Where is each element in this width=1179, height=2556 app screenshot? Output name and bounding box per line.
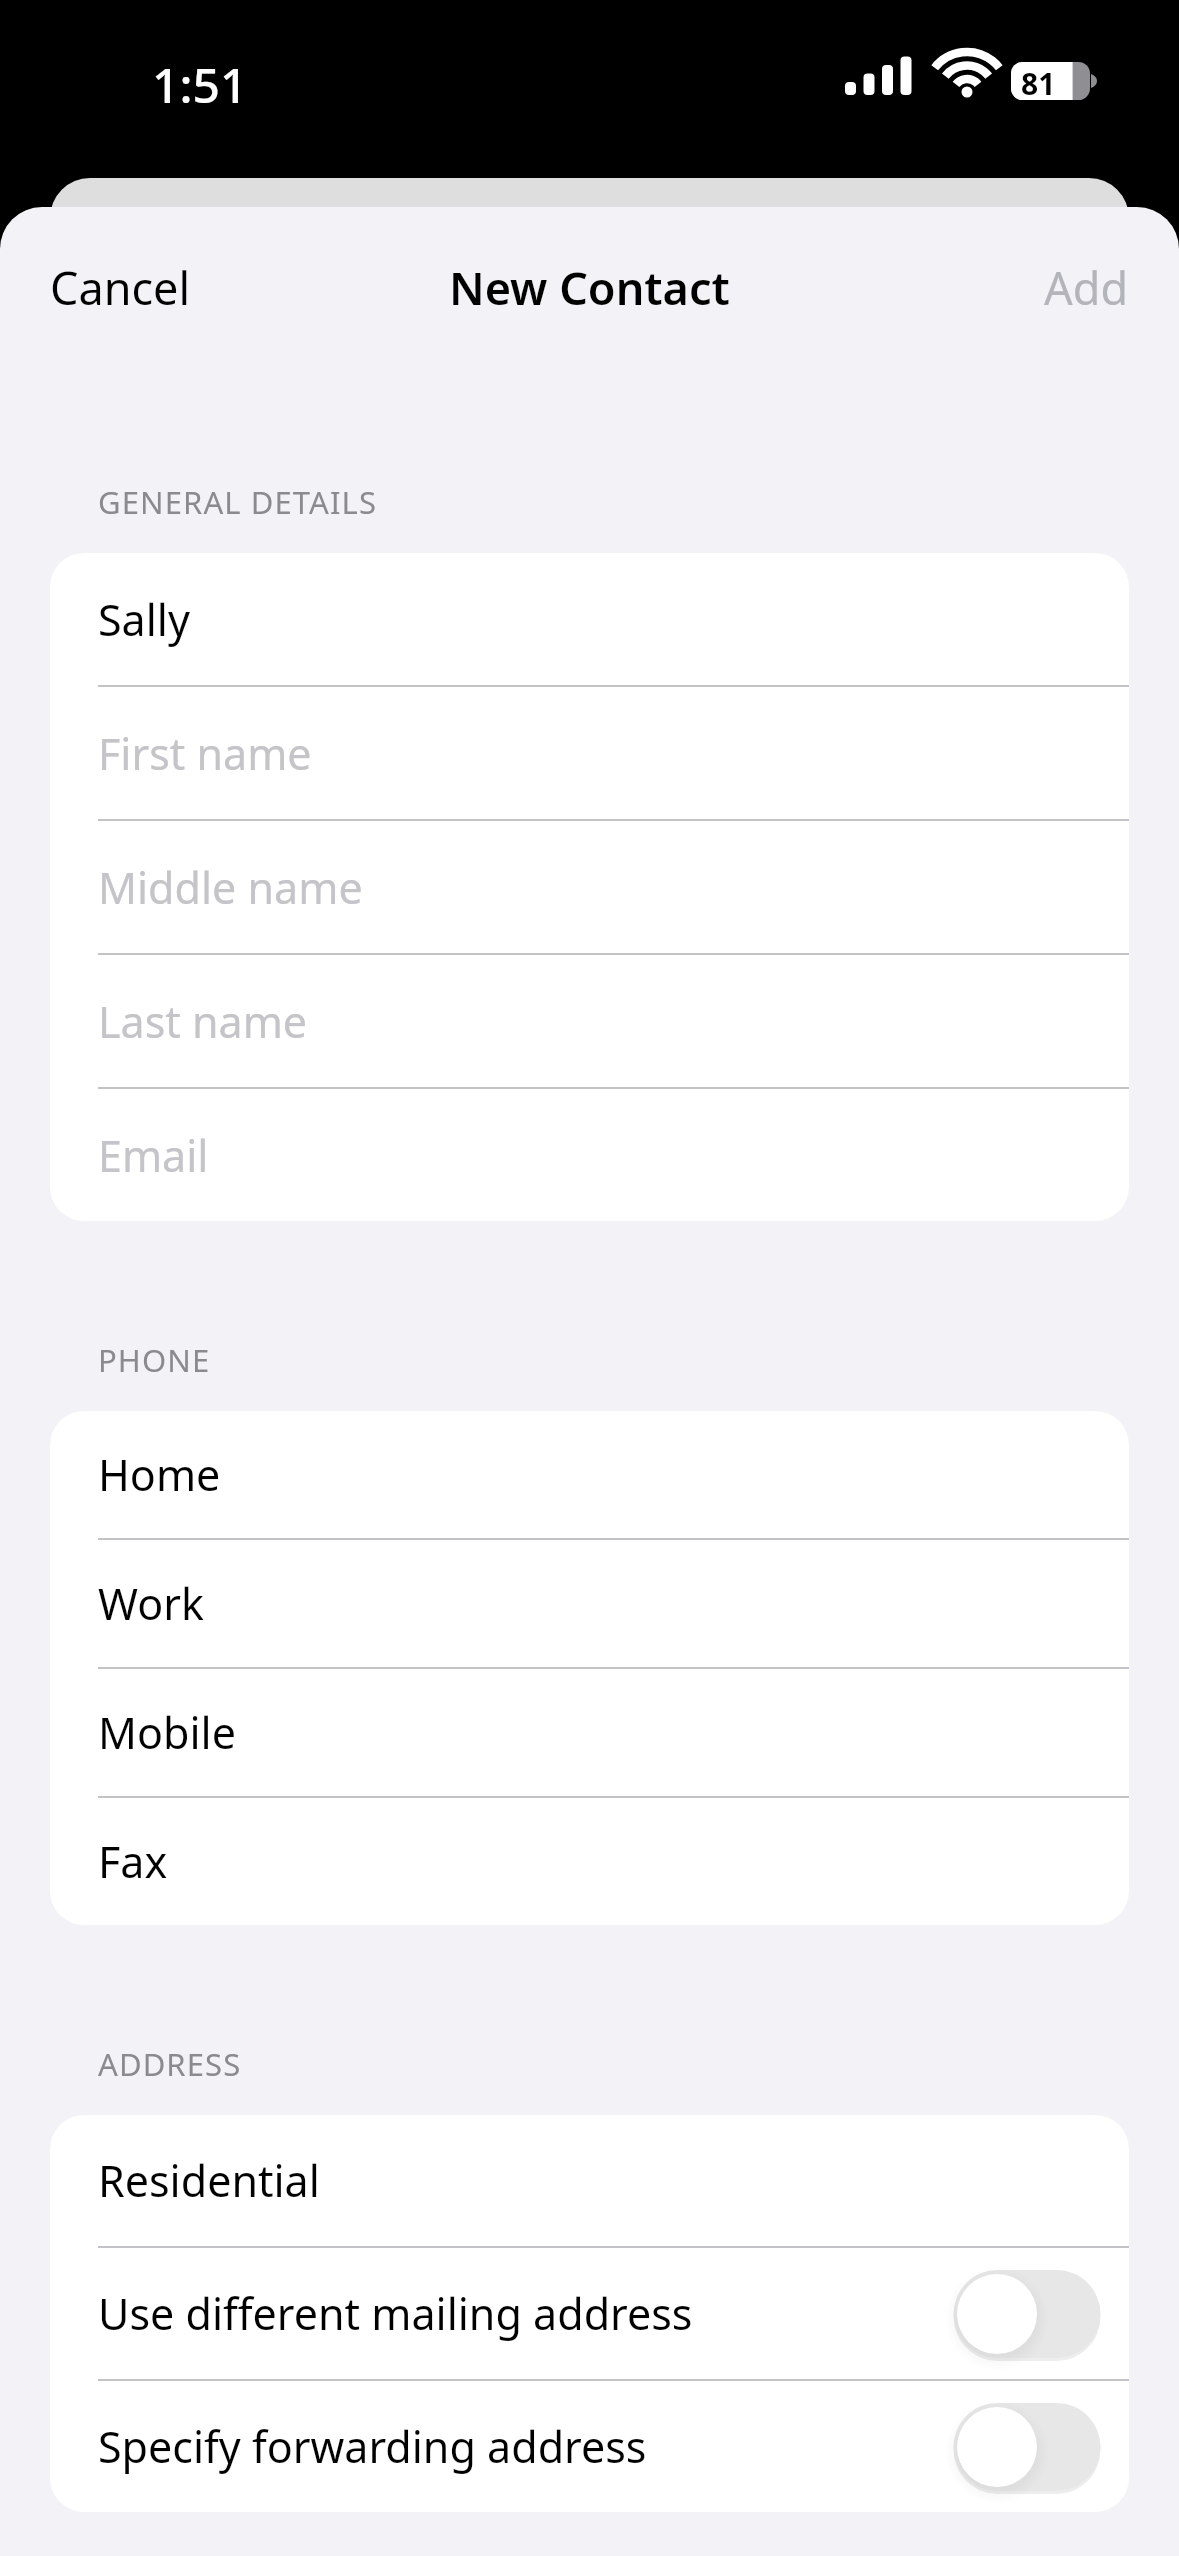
button[interactable]: Email [50,1089,1129,1221]
staticText: PHONE [98,1339,211,1381]
button[interactable]: Use different mailing address [50,2248,1129,2379]
button[interactable]: Middle name [50,821,1129,953]
button[interactable]: Last name [50,955,1129,1087]
staticText: Use different mailing address [98,2284,951,2343]
staticText: Work [98,1574,1103,1633]
staticText: 81 [1021,63,1056,104]
staticText: Add [1044,257,1129,318]
button[interactable]: Cancel [36,243,205,332]
staticText: Sally [98,590,1103,649]
staticText: Email [98,1126,1103,1185]
button[interactable]: Fax [50,1798,1129,1925]
staticText: Specify forwarding address [98,2417,951,2476]
staticText: First name [98,724,1103,783]
staticText: Home [98,1445,1103,1504]
staticText: New Contact [449,257,730,318]
staticText: GENERAL DETAILS [98,481,378,523]
button[interactable]: First name [50,687,1129,819]
button[interactable]: Home [50,1411,1129,1538]
staticText: Cancel [50,257,191,318]
button[interactable]: Specify forwarding address [951,2401,1103,2493]
button[interactable]: Sally [50,553,1129,685]
button[interactable]: Work [50,1540,1129,1667]
button[interactable]: Use different mailing address [951,2268,1103,2360]
button[interactable]: Specify forwarding address [50,2381,1129,2512]
button[interactable]: Residential [50,2115,1129,2246]
button[interactable]: Add [1030,243,1143,332]
staticText: Residential [98,2151,1103,2210]
staticText: 1:51 [152,52,248,117]
staticText: ADDRESS [98,2043,242,2085]
button[interactable]: Mobile [50,1669,1129,1796]
staticText: Last name [98,992,1103,1051]
staticText: Mobile [98,1703,1103,1762]
staticText: Middle name [98,858,1103,917]
staticText: Fax [98,1832,1103,1891]
